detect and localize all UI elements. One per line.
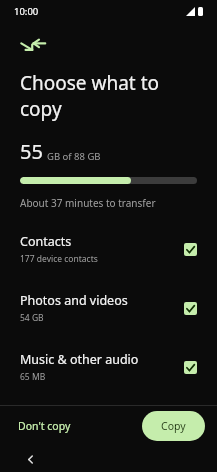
- staticText: Choose what to copy: [20, 70, 197, 122]
- staticText: Contacts: [20, 233, 72, 250]
- staticText: 55: [20, 138, 43, 165]
- button[interactable]: Photos and videos: [0, 283, 217, 333]
- staticText: 65 MB: [20, 371, 46, 383]
- staticText: Copy: [161, 419, 186, 433]
- staticText: GB of 88 GB: [47, 150, 101, 163]
- staticText: Music & other audio: [20, 351, 139, 368]
- staticText: Photos and videos: [20, 292, 128, 309]
- button[interactable]: Back: [22, 451, 38, 467]
- button[interactable]: Contacts: [0, 224, 217, 274]
- button[interactable]: Music & other audio: [0, 342, 217, 392]
- button[interactable]: Copy: [142, 411, 205, 441]
- staticText: 54 GB: [20, 312, 44, 324]
- staticText: 177 device contacts: [20, 253, 98, 265]
- staticText: Don't copy: [18, 419, 71, 433]
- staticText: 10:00: [14, 5, 39, 18]
- staticText: About 37 minutes to transfer: [20, 196, 156, 210]
- button[interactable]: Don't copy: [12, 413, 77, 439]
